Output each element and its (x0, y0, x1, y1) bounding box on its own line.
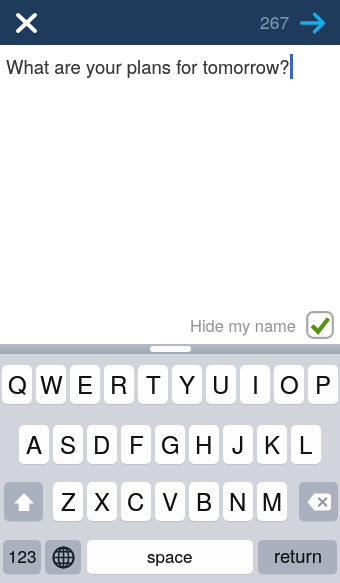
staticText: Hide my name (190, 313, 297, 337)
staticText: What are your plans for tomorrow? (6, 53, 290, 79)
button[interactable]: O (274, 365, 304, 404)
button[interactable]: S (53, 425, 83, 464)
button[interactable]: V (155, 482, 185, 521)
button[interactable]: I (240, 365, 270, 404)
staticText: 123 (8, 543, 37, 567)
staticText: Y (179, 366, 196, 400)
staticText: B (196, 483, 213, 517)
button[interactable]: Shift (4, 482, 43, 521)
button[interactable]: Send (297, 7, 328, 38)
staticText: D (93, 426, 111, 460)
staticText: T (146, 366, 161, 400)
staticText: K (264, 426, 281, 460)
button[interactable]: L (291, 425, 321, 464)
staticText: J (232, 426, 244, 460)
staticText: W (40, 366, 63, 400)
staticText: I (252, 366, 259, 400)
staticText: A (26, 426, 43, 460)
staticText: C (127, 483, 145, 517)
button[interactable]: J (223, 425, 253, 464)
button[interactable]: R (104, 365, 134, 404)
staticText: D (93, 426, 111, 460)
staticText: V (162, 483, 179, 517)
staticText: P (315, 366, 332, 400)
staticText: F (129, 426, 144, 460)
staticText: J (232, 426, 244, 460)
staticText: H (195, 426, 213, 460)
staticText: E (77, 366, 94, 400)
staticText: B (196, 483, 213, 517)
staticText: 267 (260, 9, 290, 34)
button[interactable]: T (138, 365, 168, 404)
staticText: space (147, 543, 193, 567)
staticText: G (161, 426, 180, 460)
staticText: T (146, 366, 161, 400)
staticText: G (161, 426, 180, 460)
staticText: Q (8, 366, 27, 400)
staticText: V (162, 483, 179, 517)
button[interactable]: W (36, 365, 66, 404)
staticText: return (274, 542, 322, 568)
staticText: O (280, 366, 299, 400)
staticText: S (60, 426, 77, 460)
staticText: Z (61, 483, 76, 517)
staticText: X (94, 483, 111, 517)
button[interactable]: E (70, 365, 100, 404)
button[interactable]: A (19, 425, 49, 464)
staticText: N (229, 483, 247, 517)
staticText: P (315, 366, 332, 400)
staticText: W (40, 366, 63, 400)
staticText: space (147, 543, 193, 567)
staticText: F (129, 426, 144, 460)
button[interactable]: Z (53, 482, 83, 521)
button[interactable]: D (87, 425, 117, 464)
staticText: M (262, 483, 282, 517)
staticText: U (212, 366, 230, 400)
button[interactable]: Q (2, 365, 32, 404)
button[interactable]: space (87, 540, 253, 574)
staticText: O (280, 366, 299, 400)
staticText: A (26, 426, 43, 460)
staticText: M (262, 483, 282, 517)
button[interactable]: Backspace (299, 482, 338, 521)
staticText: S (60, 426, 77, 460)
staticText: I (252, 366, 259, 400)
button[interactable]: G (155, 425, 185, 464)
button[interactable]: C (121, 482, 151, 521)
button[interactable]: K (257, 425, 287, 464)
staticText: K (264, 426, 281, 460)
button[interactable]: Y (172, 365, 202, 404)
staticText: R (110, 366, 128, 400)
staticText: return (274, 542, 322, 568)
staticText: E (77, 366, 94, 400)
button[interactable]: 123 (3, 540, 41, 574)
staticText: N (229, 483, 247, 517)
staticText: Y (179, 366, 196, 400)
staticText: U (212, 366, 230, 400)
button[interactable]: Hide my name (190, 311, 334, 339)
button[interactable]: F (121, 425, 151, 464)
staticText: Q (8, 366, 27, 400)
button[interactable]: H (189, 425, 219, 464)
staticText: 123 (8, 543, 37, 567)
button[interactable]: U (206, 365, 236, 404)
button[interactable]: X (87, 482, 117, 521)
staticText: L (299, 426, 313, 460)
button[interactable]: Close (10, 6, 43, 39)
staticText: What are your plans for tomorrow? (6, 53, 290, 79)
staticText: Z (61, 483, 76, 517)
button[interactable]: return (258, 540, 337, 574)
button[interactable]: Switch keyboard (45, 540, 81, 574)
staticText: H (195, 426, 213, 460)
staticText: R (110, 366, 128, 400)
button[interactable]: P (308, 365, 338, 404)
button[interactable]: N (223, 482, 253, 521)
staticText: X (94, 483, 111, 517)
button[interactable]: B (189, 482, 219, 521)
staticText: L (299, 426, 313, 460)
staticText: C (127, 483, 145, 517)
button[interactable]: M (257, 482, 287, 521)
